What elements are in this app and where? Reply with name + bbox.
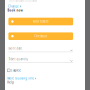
staticText: I agree: [11, 69, 21, 72]
staticText: Add tickets: [33, 20, 48, 23]
staticText: Book now: [8, 9, 23, 12]
staticText: Ticket quantity: [8, 57, 27, 61]
button[interactable]: Checkout: [8, 32, 73, 40]
button[interactable]: I agree: [7, 69, 21, 72]
button[interactable]: Change: [8, 5, 21, 8]
button[interactable]: More booking info: [7, 77, 36, 80]
staticText: Event date: [8, 47, 22, 50]
staticText: More booking info: [7, 77, 34, 80]
button[interactable]: Add tickets: [8, 18, 73, 25]
staticText: Checkout: [34, 34, 47, 38]
staticText: Change: [8, 5, 19, 8]
staticText: Help: [7, 81, 14, 84]
staticText: Reservation details for your upcoming tr…: [9, 0, 37, 2]
